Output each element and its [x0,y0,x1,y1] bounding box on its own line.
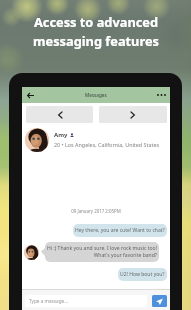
staticText: 09 January 2017 2:05PM [22,208,170,214]
staticText: Type a message... [29,298,68,304]
staticText: 20 • Los Angeles, California, United Sta… [54,141,160,148]
button[interactable]: Hey there, you are cute! Want to chat? [73,224,167,237]
button[interactable]: Amy [22,125,170,154]
button[interactable]: Previous [26,106,93,123]
button[interactable]: Back [22,87,39,103]
button[interactable]: Next [99,106,167,123]
staticText: Access to advanced messaging features [33,13,159,50]
staticText: Messages [85,92,107,98]
button[interactable]: Type a message... [25,295,147,307]
button[interactable]: Hi :) Thank you and sure. I love rock mu… [45,242,159,262]
button[interactable]: More options [153,87,170,103]
button[interactable]: Send [152,295,167,307]
button[interactable]: U2! How bout you? [118,268,167,281]
staticText: Hi :) Thank you and sure. I love rock mu… [47,245,157,259]
staticText: U2! How bout you? [120,271,165,278]
staticText: Hey there, you are cute! Want to chat? [75,227,165,234]
staticText: Amy [54,131,68,139]
